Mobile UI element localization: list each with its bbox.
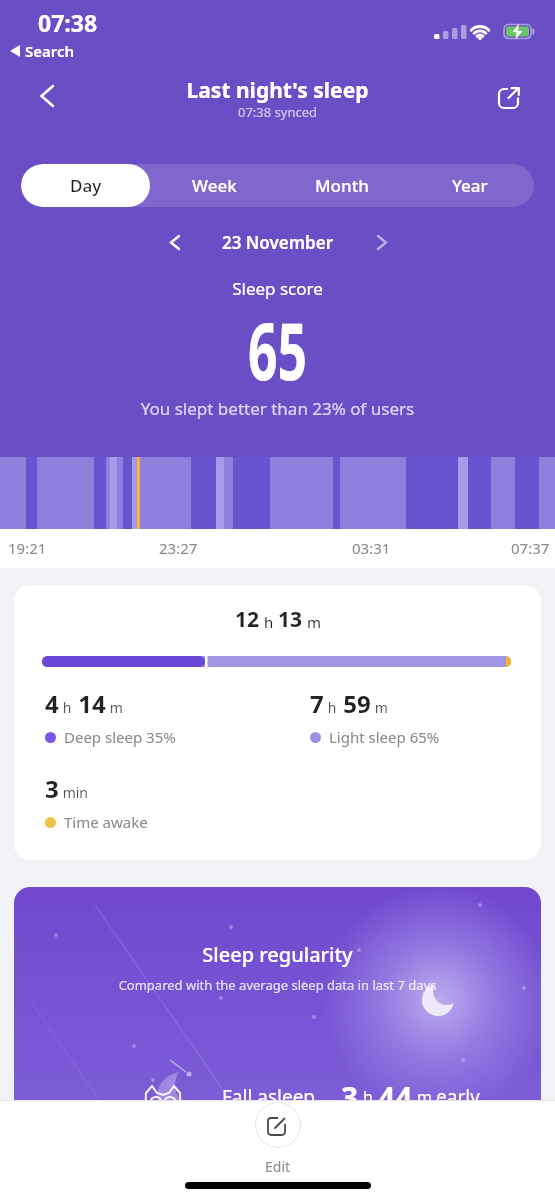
staticText: 23 November — [222, 231, 334, 254]
staticText: 65 — [94, 297, 461, 403]
button[interactable]: Month — [278, 164, 406, 207]
staticText: 07:37 — [511, 538, 550, 558]
staticText: 19:21 — [8, 538, 47, 558]
staticText: 03:31 — [352, 538, 391, 558]
staticText: h — [363, 1086, 373, 1108]
staticText: 07:38 — [38, 7, 98, 38]
staticText: Day — [70, 174, 102, 197]
staticText: Month — [315, 174, 369, 197]
button[interactable] — [255, 1102, 301, 1148]
staticText: h — [59, 698, 72, 717]
staticText: h — [324, 698, 337, 717]
staticText: 3 — [341, 1077, 359, 1118]
staticText: Last night's sleep — [0, 76, 555, 105]
staticText: 23:27 — [159, 538, 198, 558]
staticText: Fall asleep — [222, 1084, 316, 1110]
staticText: 13 — [278, 605, 303, 634]
staticText: 07:38 synced — [0, 103, 555, 121]
staticText: early — [436, 1084, 480, 1110]
button[interactable]: Week — [150, 164, 278, 207]
staticText: 14 — [72, 687, 106, 720]
staticText: Search — [25, 41, 75, 61]
button[interactable] — [369, 229, 395, 255]
staticText: Deep sleep 35% — [64, 727, 176, 747]
staticText: Compared with the average sleep data in … — [14, 976, 541, 994]
staticText: m — [371, 698, 388, 717]
staticText: Time awake — [64, 812, 148, 832]
staticText: Week — [192, 174, 237, 197]
staticText: m — [303, 612, 321, 632]
staticText: Sleep regularity — [14, 941, 541, 968]
staticText: 4 — [45, 687, 59, 720]
button[interactable] — [161, 229, 187, 255]
staticText: 12 — [235, 605, 260, 634]
button[interactable] — [490, 78, 528, 116]
staticText: m — [417, 1086, 432, 1108]
staticText: 3 — [45, 772, 59, 805]
button[interactable]: Year — [406, 164, 534, 207]
staticText: 59 — [337, 687, 371, 720]
staticText: 44 — [378, 1077, 413, 1118]
staticText: h — [260, 612, 278, 632]
button[interactable]: Day — [21, 164, 150, 207]
button[interactable] — [28, 78, 64, 114]
staticText: Year — [452, 174, 488, 197]
staticText: Edit — [265, 1157, 291, 1176]
staticText: m — [106, 698, 123, 717]
staticText: 7 — [310, 687, 324, 720]
button[interactable]: Search — [10, 41, 75, 61]
staticText: min — [59, 783, 88, 802]
button[interactable]: Sleep regularity — [14, 887, 541, 1127]
staticText: You slept better than 23% of users — [0, 397, 555, 420]
staticText: Light sleep 65% — [329, 727, 440, 747]
button[interactable]: 12 — [14, 585, 541, 860]
staticText: Sleep score — [0, 277, 555, 300]
